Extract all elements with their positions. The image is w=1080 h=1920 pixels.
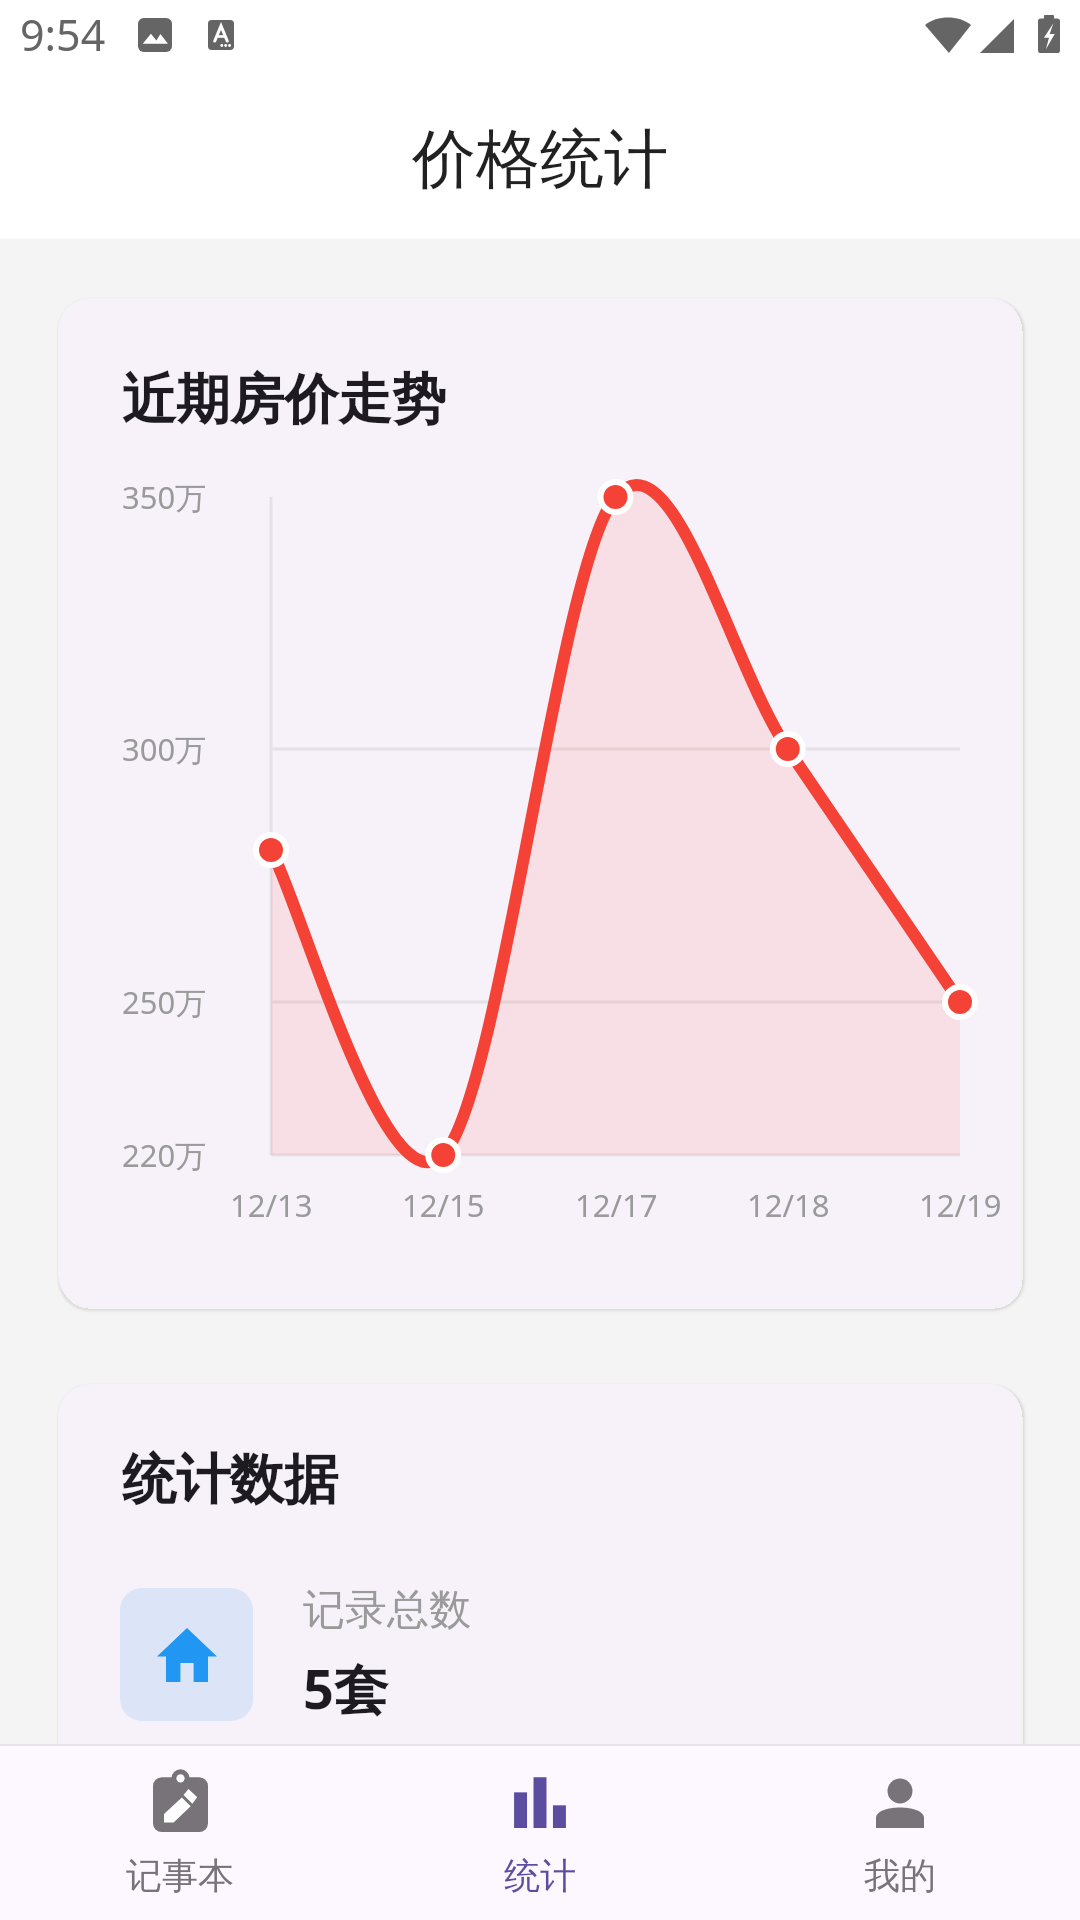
staticText: 记录总数 (303, 1584, 471, 1637)
staticText: 350万 (122, 476, 207, 518)
staticText: 250万 (122, 981, 207, 1023)
staticText: 记事本 (126, 1853, 234, 1897)
staticText: 9:54 (20, 5, 106, 64)
staticText: 统计数据 (122, 1446, 338, 1514)
staticText: 统计 (504, 1853, 576, 1897)
staticText: 12/13 (230, 1184, 313, 1226)
staticText: 价格统计 (412, 119, 668, 200)
staticText: 12/18 (747, 1184, 830, 1226)
button[interactable]: Statistics (360, 1746, 720, 1920)
staticText: 300万 (122, 728, 207, 770)
staticText: 近期房价走势 (122, 366, 446, 434)
staticText: 12/19 (919, 1184, 1002, 1226)
staticText: 12/15 (402, 1184, 485, 1226)
staticText: 220万 (122, 1134, 207, 1176)
button[interactable]: Profile (720, 1746, 1080, 1920)
staticText: 5套 (303, 1651, 388, 1725)
button[interactable]: Notes (0, 1746, 360, 1920)
staticText: 我的 (864, 1853, 936, 1897)
staticText: 12/17 (575, 1184, 658, 1226)
